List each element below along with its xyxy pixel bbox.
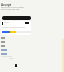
button[interactable] (1, 40, 29, 44)
button[interactable] (1, 36, 29, 40)
staticText: and track all your orders (1, 6, 24, 9)
button[interactable] (1, 21, 31, 35)
staticText: Accept (1, 3, 12, 7)
button[interactable] (1, 44, 29, 48)
button[interactable]: Action (15, 64, 17, 67)
button[interactable] (1, 52, 29, 56)
staticText: right inside the app (1, 8, 20, 11)
button[interactable] (1, 48, 29, 52)
button[interactable] (2, 16, 31, 20)
